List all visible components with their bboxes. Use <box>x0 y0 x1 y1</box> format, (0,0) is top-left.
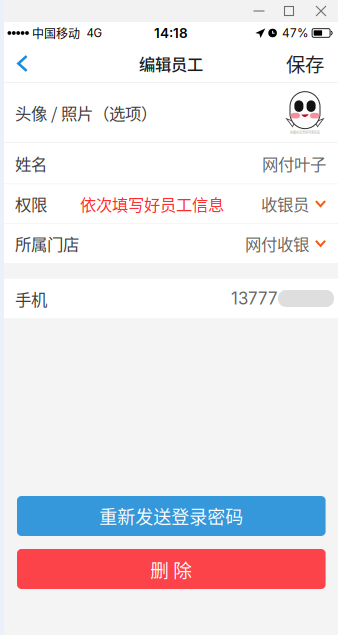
staticText: 13777 <box>231 288 278 309</box>
staticText: 编辑员工 <box>139 52 203 75</box>
button[interactable]: Maximise <box>274 0 304 22</box>
button[interactable]: 重新发送登录密码 <box>17 496 326 536</box>
staticText: 保存 <box>286 49 324 77</box>
staticText: 网付叶子 <box>262 151 326 175</box>
staticText: 所属门店 <box>15 231 79 255</box>
staticText: 14:18 <box>154 25 188 41</box>
staticText: 47% <box>282 26 309 40</box>
staticText: 网付收银 <box>245 231 309 255</box>
staticText: 删 除 <box>150 555 192 582</box>
button[interactable]: Back <box>4 44 61 83</box>
staticText: 权限 <box>15 192 47 215</box>
staticText: 4G <box>87 26 103 40</box>
button[interactable]: 保存 <box>286 44 338 83</box>
staticText: 收银员 <box>261 192 309 215</box>
staticText: 重新发送登录密码 <box>99 503 243 529</box>
staticText: 中国移动 <box>32 24 80 42</box>
button[interactable]: Close <box>304 0 338 22</box>
staticText: 姓名 <box>15 151 47 175</box>
staticText: 你瞧你这奇怪可笑的表 <box>290 130 320 135</box>
staticText: 头像 / 照片（选项） <box>15 101 157 124</box>
button[interactable]: Minimise <box>244 0 274 22</box>
staticText: 依次填写好员工信息 <box>80 192 224 216</box>
button[interactable]: 删 除 <box>17 549 326 589</box>
staticText: 手机 <box>15 287 47 310</box>
